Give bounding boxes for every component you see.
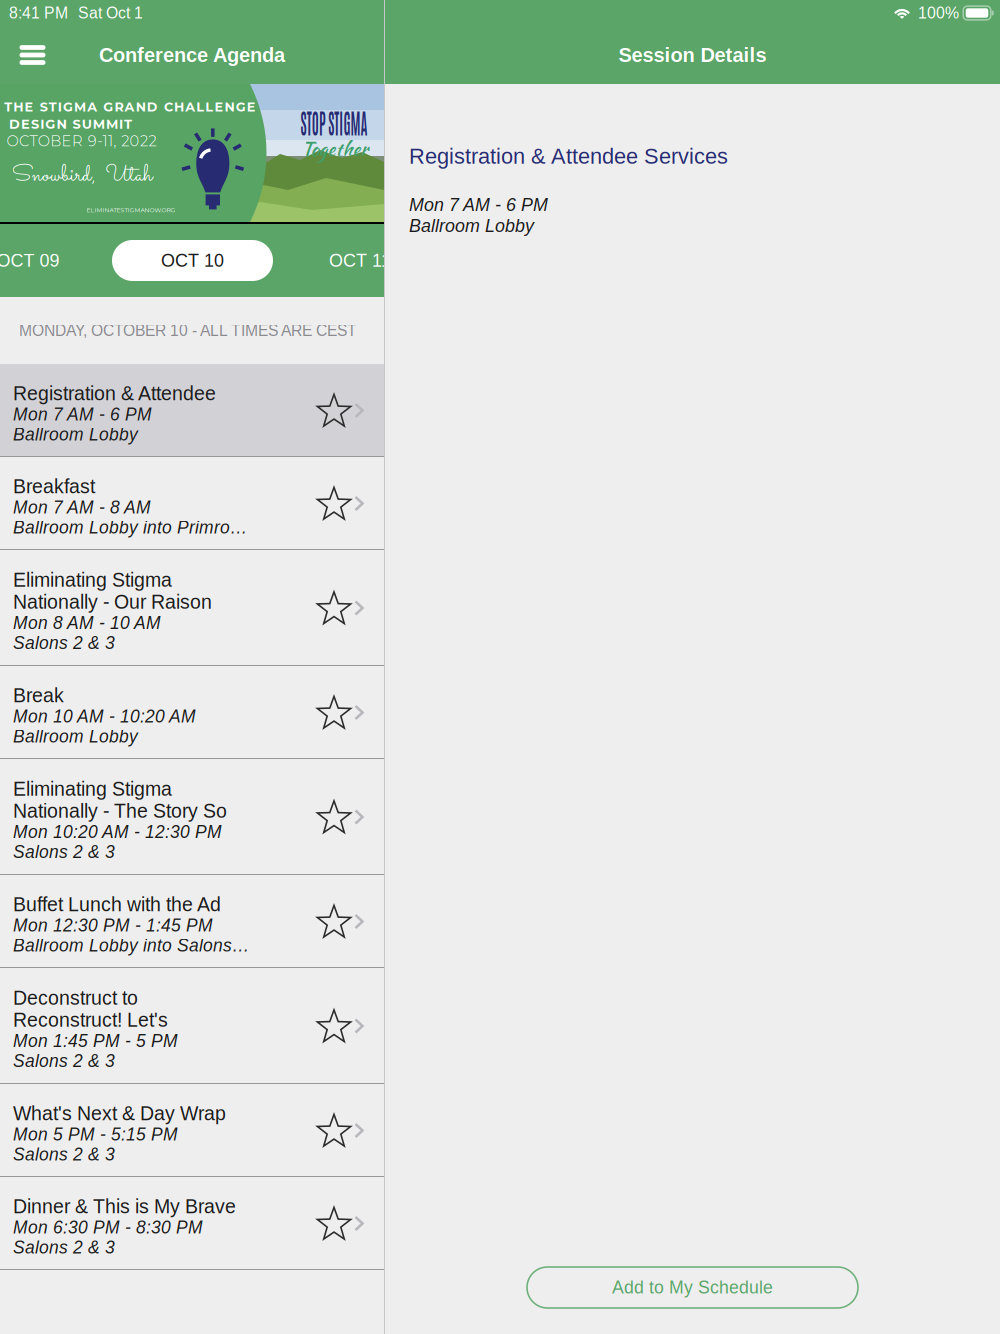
staticText: OCT 11 bbox=[329, 250, 391, 271]
staticText: Mon 7 AM - 8 AM bbox=[13, 498, 151, 517]
staticText: Salons 2 & 3 bbox=[13, 1238, 115, 1257]
staticText: Ballroom Lobby into Primro… bbox=[13, 518, 247, 537]
staticText: STOP STIGMA bbox=[268, 103, 399, 139]
button[interactable]: What's Next & Day Wrap bbox=[0, 1084, 384, 1177]
staticText: Mon 8 AM - 10 AM bbox=[13, 613, 161, 633]
staticText: Ballroom Lobby bbox=[13, 727, 138, 746]
staticText: What's Next & Day Wrap bbox=[13, 1103, 226, 1124]
button[interactable]: Eliminating Stigma bbox=[0, 550, 384, 666]
button[interactable]: Dinner & This is My Brave bbox=[0, 1177, 384, 1270]
staticText: ELIMINATESTIGMANOW.ORG bbox=[86, 206, 175, 214]
staticText: Breakfast bbox=[13, 476, 95, 497]
staticText: Salons 2 & 3 bbox=[13, 1145, 115, 1164]
staticText: Conference Agenda bbox=[99, 44, 285, 66]
button[interactable]: Menu bbox=[0, 26, 65, 84]
staticText: Registration & Attendee bbox=[13, 383, 216, 404]
staticText: Dinner & This is My Brave bbox=[13, 1196, 236, 1217]
button[interactable]: Deconstruct to bbox=[0, 968, 384, 1084]
staticText: Buffet Lunch with the Ad bbox=[13, 894, 221, 915]
staticText: Ballroom Lobby bbox=[409, 216, 534, 236]
staticText: Reconstruct! Let's bbox=[13, 1009, 168, 1031]
staticText: Sat Oct 1 bbox=[78, 4, 143, 22]
staticText: 8:41 PM bbox=[9, 4, 68, 22]
button[interactable]: Eliminating Stigma bbox=[0, 759, 384, 875]
staticText: Together bbox=[301, 135, 368, 163]
staticText: DESIGN SUMMIT bbox=[9, 116, 132, 132]
button[interactable]: OCT 11 bbox=[281, 237, 438, 283]
staticText: Mon 5 PM - 5:15 PM bbox=[13, 1125, 178, 1144]
staticText: Salons 2 & 3 bbox=[13, 1051, 115, 1071]
button[interactable]: Add to My Schedule bbox=[527, 1267, 858, 1308]
staticText: Mon 12:30 PM - 1:45 PM bbox=[13, 916, 213, 935]
staticText: OCT 10 bbox=[161, 250, 224, 271]
button[interactable]: Registration & Attendee bbox=[0, 364, 384, 457]
staticText: MONDAY, OCTOBER 10 - ALL TIMES ARE CEST bbox=[19, 322, 357, 339]
staticText: THE STIGMA GRAND CHALLENGE bbox=[4, 99, 256, 115]
staticText: Deconstruct to bbox=[13, 987, 138, 1009]
staticText: Mon 10:20 AM - 12:30 PM bbox=[13, 822, 222, 842]
button[interactable]: Breakfast bbox=[0, 457, 384, 550]
button[interactable]: Break bbox=[0, 666, 384, 759]
staticText: Break bbox=[13, 685, 64, 706]
button[interactable]: OCT 10 bbox=[112, 240, 273, 281]
staticText: Salons 2 & 3 bbox=[13, 842, 115, 862]
staticText: OCTOBER 9-11, 2022 bbox=[7, 132, 156, 150]
staticText: Add to My Schedule bbox=[612, 1278, 773, 1297]
staticText: Mon 7 AM - 6 PM bbox=[409, 195, 548, 215]
staticText: Ballroom Lobby into Salons… bbox=[13, 936, 249, 955]
staticText: OCT 09 bbox=[0, 250, 59, 271]
staticText: Mon 10 AM - 10:20 AM bbox=[13, 707, 196, 726]
staticText: Mon 6:30 PM - 8:30 PM bbox=[13, 1218, 203, 1237]
staticText: Mon 7 AM - 6 PM bbox=[13, 405, 152, 424]
staticText: 100% bbox=[918, 4, 959, 22]
staticText: Eliminating Stigma bbox=[13, 778, 172, 800]
staticText: Mon 1:45 PM - 5 PM bbox=[13, 1031, 178, 1051]
staticText: Session Details bbox=[618, 44, 766, 66]
staticText: Salons 2 & 3 bbox=[13, 633, 115, 653]
staticText: Ballroom Lobby bbox=[13, 425, 138, 444]
staticText: Snowbird, Utah bbox=[11, 159, 152, 193]
staticText: Nationally - The Story So bbox=[13, 800, 227, 822]
button[interactable]: OCT 09 bbox=[0, 237, 106, 283]
button[interactable]: Buffet Lunch with the Ad bbox=[0, 875, 384, 968]
staticText: Eliminating Stigma bbox=[13, 569, 172, 591]
staticText: Nationally - Our Raison bbox=[13, 591, 212, 613]
staticText: Registration & Attendee Services bbox=[409, 144, 728, 168]
